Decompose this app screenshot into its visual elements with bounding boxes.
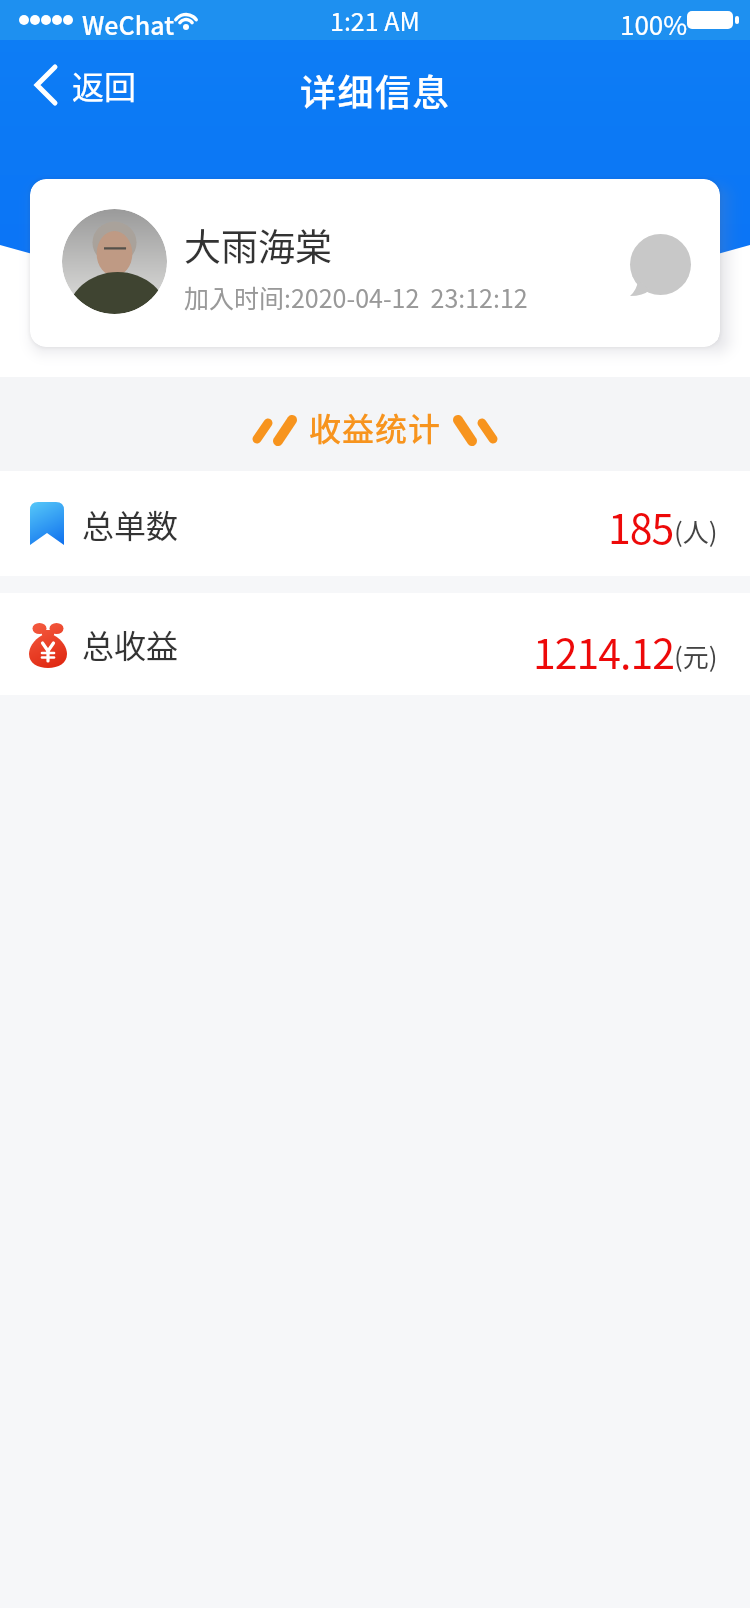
staticText: 1214.12 — [533, 621, 674, 680]
button[interactable]: 总收益 — [0, 593, 750, 695]
staticText: (元) — [674, 637, 718, 675]
staticText: (人) — [674, 512, 718, 550]
staticText: 1:21 AM — [330, 2, 420, 38]
button[interactable] — [630, 234, 694, 298]
staticText: WeChat — [82, 6, 175, 42]
staticText: 加入时间:2020-04-12 23:12:12 — [184, 279, 528, 315]
staticText: 总单数 — [82, 501, 179, 547]
staticText: 100% — [620, 5, 688, 43]
staticText: 185 — [608, 496, 674, 555]
button[interactable]: 返回 — [30, 58, 137, 112]
button[interactable]: 总单数 — [0, 471, 750, 576]
staticText: 详细信息 — [300, 64, 451, 116]
staticText: 大雨海棠 — [184, 218, 332, 272]
staticText: 收益统计 — [309, 404, 442, 450]
staticText: 总收益 — [82, 621, 179, 667]
staticText: 返回 — [72, 62, 137, 108]
